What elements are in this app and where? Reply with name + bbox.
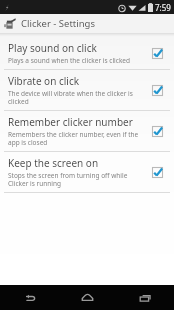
- staticText: Remembers the clicker number, even if th…: [8, 130, 146, 147]
- button[interactable]: Vibrate on click: [0, 70, 174, 110]
- button[interactable]: Keep the screen on: [0, 152, 174, 192]
- button[interactable]: Play sound on click: [0, 37, 174, 69]
- staticText: Plays a sound when the clicker is clicke…: [8, 56, 131, 65]
- button[interactable]: Toggle setting: [152, 85, 163, 96]
- staticText: The device will vibrate when the clicker…: [8, 89, 146, 106]
- staticText: Keep the screen on: [8, 156, 99, 170]
- button[interactable]: Back: [0, 285, 58, 310]
- button[interactable]: Toggle setting: [152, 167, 163, 178]
- staticText: Stops the screen from turning off while …: [8, 171, 146, 188]
- button[interactable]: Recent apps: [116, 285, 174, 310]
- staticText: Remember clicker number: [8, 115, 133, 129]
- button[interactable]: Toggle setting: [152, 126, 163, 137]
- button[interactable]: Toggle setting: [152, 48, 163, 59]
- button[interactable]: Remember clicker number: [0, 111, 174, 151]
- button[interactable]: Home: [58, 285, 116, 310]
- staticText: Vibrate on click: [8, 74, 80, 88]
- staticText: 7:59: [155, 2, 171, 13]
- staticText: Play sound on click: [8, 41, 97, 55]
- staticText: Clicker - Settings: [21, 17, 95, 30]
